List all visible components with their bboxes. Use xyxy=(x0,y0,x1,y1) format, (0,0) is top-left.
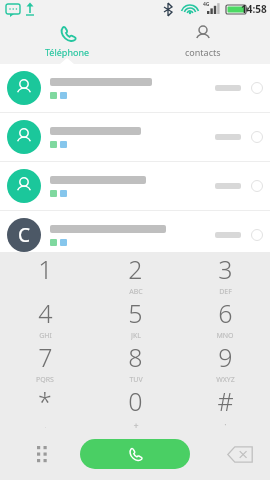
button[interactable]: Téléphone xyxy=(0,18,135,64)
button[interactable]: 6 xyxy=(180,296,270,340)
button[interactable]: 8 xyxy=(90,340,180,384)
staticText: 2 xyxy=(128,252,143,286)
staticText: 14:58 xyxy=(241,2,267,16)
staticText: Téléphone xyxy=(45,46,90,58)
staticText: JKL xyxy=(131,331,141,340)
button[interactable]: Backspace xyxy=(224,442,256,466)
button[interactable]: 0 xyxy=(90,384,180,428)
button[interactable]: 2 xyxy=(90,252,180,296)
staticText: # xyxy=(217,384,234,418)
staticText: 9 xyxy=(218,340,233,374)
staticText: ABC xyxy=(129,287,143,296)
staticText: MNO xyxy=(216,331,234,340)
button[interactable]: 7 xyxy=(0,340,90,384)
button[interactable]: C xyxy=(0,211,270,259)
button[interactable]: 4 xyxy=(0,296,90,340)
button[interactable]: contacts xyxy=(135,18,270,64)
staticText: 5 xyxy=(128,296,143,330)
button[interactable]: 9 xyxy=(180,340,270,384)
button[interactable]: Call details xyxy=(0,113,270,161)
button[interactable]: Call details xyxy=(0,162,270,210)
button[interactable]: Call details xyxy=(251,82,263,94)
button[interactable]: Call details xyxy=(0,64,270,112)
staticText: 7 xyxy=(38,340,53,374)
staticText: 3 xyxy=(218,252,233,286)
button[interactable]: * xyxy=(0,384,90,428)
button[interactable]: More options xyxy=(30,442,54,466)
staticText: 1 xyxy=(38,252,53,286)
staticText: 4G xyxy=(203,1,210,8)
staticText: + xyxy=(133,419,139,428)
button[interactable]: 3 xyxy=(180,252,270,296)
staticText: PQRS xyxy=(36,375,54,384)
staticText: contacts xyxy=(185,46,221,58)
staticText: GHI xyxy=(39,331,52,340)
button[interactable]: Call xyxy=(80,439,190,469)
staticText: 0 xyxy=(128,384,143,418)
staticText: 8 xyxy=(128,340,143,374)
staticText: ; xyxy=(224,419,227,428)
staticText: TUV xyxy=(129,375,143,384)
staticText: WXYZ xyxy=(216,375,235,384)
button[interactable]: 5 xyxy=(90,296,180,340)
staticText: DEF xyxy=(219,287,232,296)
button[interactable]: Call details xyxy=(251,229,263,241)
staticText: * xyxy=(38,384,52,418)
staticText: C xyxy=(18,222,31,248)
staticText: , xyxy=(44,419,47,428)
staticText: 6 xyxy=(218,296,233,330)
staticText: 4 xyxy=(38,296,53,330)
button[interactable]: Call details xyxy=(251,180,263,192)
button[interactable]: 1 xyxy=(0,252,90,296)
button[interactable]: Call details xyxy=(251,131,263,143)
button[interactable]: # xyxy=(180,384,270,428)
